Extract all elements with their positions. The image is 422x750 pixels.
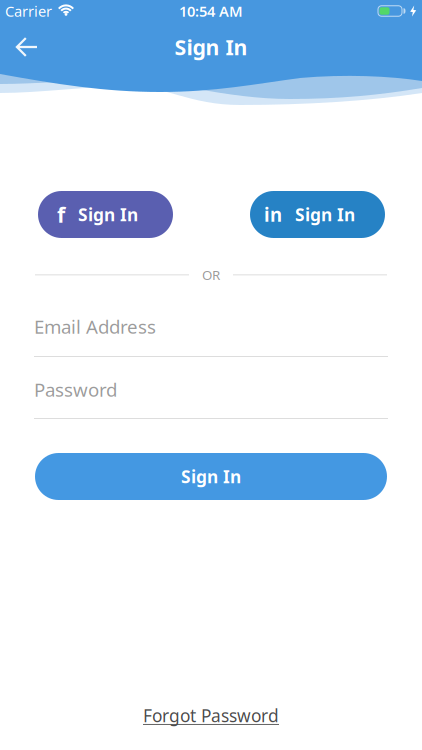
- staticText: Carrier: [5, 1, 52, 21]
- button[interactable]: Sign In: [35, 453, 387, 500]
- button[interactable]: f: [38, 191, 173, 238]
- staticText: Forgot Password: [143, 704, 279, 727]
- staticText: Password: [34, 377, 117, 402]
- staticText: Sign In: [174, 33, 247, 61]
- button[interactable]: Forgot Password: [143, 704, 279, 727]
- staticText: in: [264, 202, 282, 227]
- staticText: Email Address: [34, 314, 156, 339]
- staticText: f: [57, 200, 65, 229]
- staticText: Sign In: [78, 203, 138, 226]
- button[interactable]: Back: [0, 30, 38, 63]
- staticText: Sign In: [295, 203, 355, 226]
- staticText: 10:54 AM: [179, 1, 243, 21]
- button[interactable]: in: [250, 191, 385, 238]
- staticText: Sign In: [181, 465, 241, 488]
- staticText: OR: [202, 266, 220, 284]
